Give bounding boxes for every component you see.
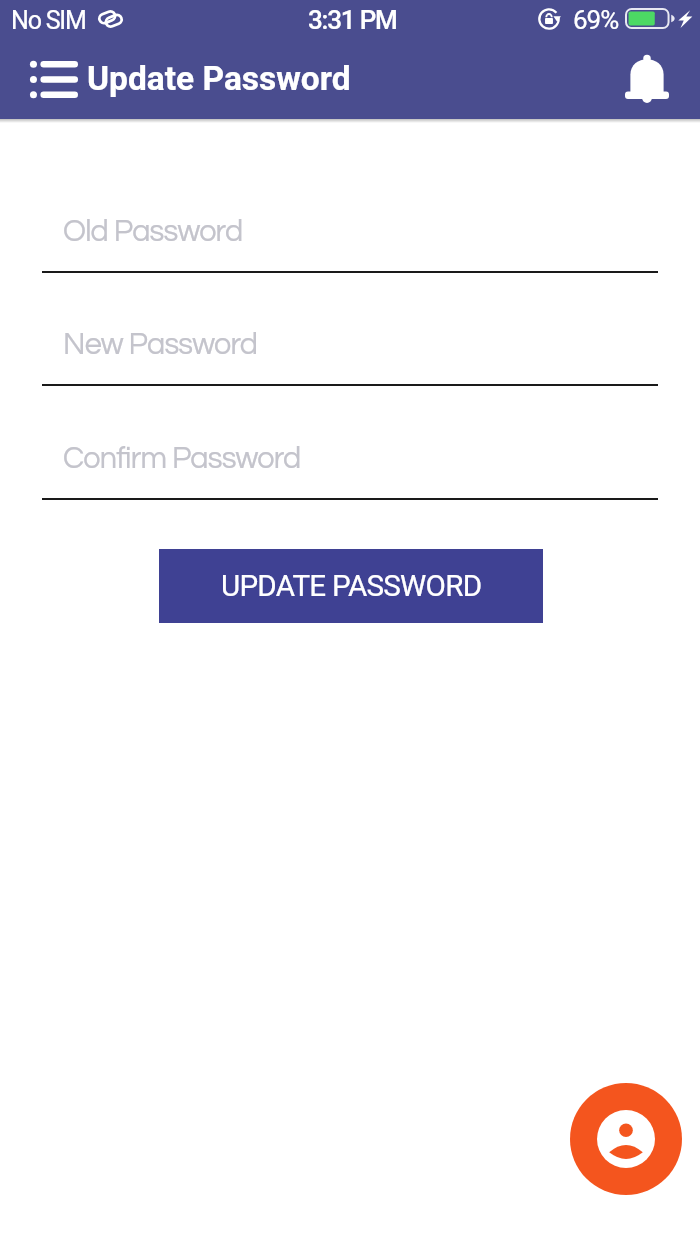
staticText: Old Password — [63, 216, 243, 248]
button[interactable]: Menu — [16, 45, 92, 113]
staticText: 3:31 PM — [308, 5, 397, 35]
staticText: UPDATE PASSWORD — [221, 569, 482, 604]
staticText: No SIM — [11, 6, 86, 35]
button[interactable]: Old Password — [42, 196, 658, 268]
staticText: New Password — [63, 329, 258, 361]
button[interactable]: Profile — [570, 1083, 682, 1195]
staticText: 69% — [573, 5, 619, 35]
button[interactable]: Notifications — [617, 49, 677, 111]
staticText: Confirm Password — [63, 443, 301, 475]
staticText: Update Password — [87, 59, 351, 98]
button[interactable]: Confirm Password — [42, 423, 658, 495]
button[interactable]: UPDATE PASSWORD — [159, 549, 543, 623]
button[interactable]: New Password — [42, 309, 658, 381]
